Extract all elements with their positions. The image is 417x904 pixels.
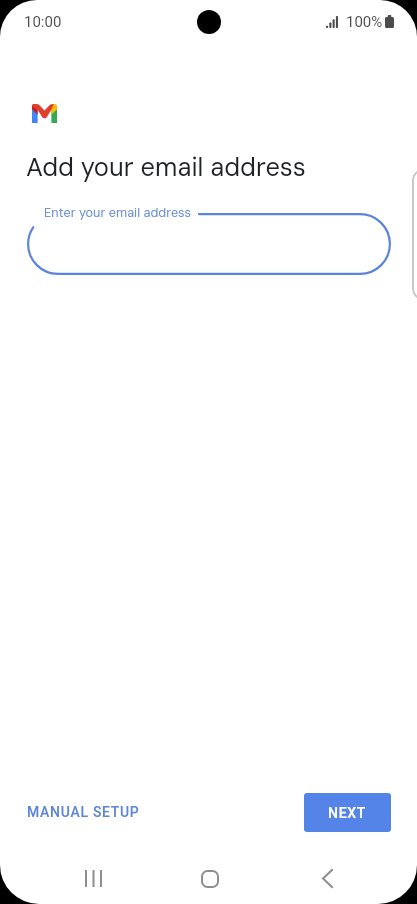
button[interactable]: Recent apps [58, 856, 128, 901]
staticText: MANUAL SETUP [27, 804, 140, 820]
button[interactable]: Enter your email address [27, 213, 391, 275]
staticText: Add your email address [26, 151, 306, 184]
button[interactable]: Home [175, 856, 245, 901]
staticText: NEXT [328, 805, 367, 821]
button[interactable]: NEXT [304, 793, 391, 832]
button[interactable]: MANUAL SETUP [19, 797, 148, 827]
staticText: 100% [346, 13, 383, 31]
staticText: 10:00 [24, 13, 62, 31]
staticText: Enter your email address [44, 204, 192, 221]
button[interactable]: Back [292, 856, 362, 901]
